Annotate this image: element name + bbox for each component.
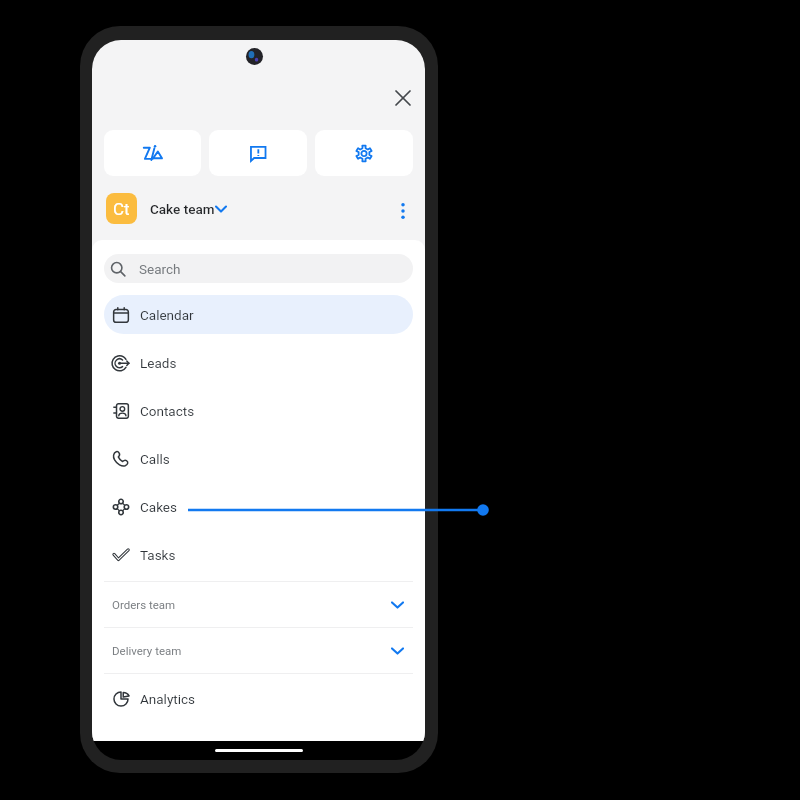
staticText: Calls xyxy=(140,451,170,467)
staticText: Cake team xyxy=(150,201,215,217)
button[interactable]: Calendar xyxy=(104,295,413,334)
staticText: Leads xyxy=(140,355,177,371)
button[interactable]: Cakes xyxy=(104,487,413,526)
staticText: Calendar xyxy=(140,307,194,323)
staticText: Analytics xyxy=(140,691,196,707)
button[interactable]: Calls xyxy=(104,439,413,478)
button[interactable]: Orders team xyxy=(92,582,425,627)
button[interactable]: More options xyxy=(387,193,419,225)
button[interactable]: Zia assistant xyxy=(104,130,201,176)
button[interactable]: Cake team xyxy=(150,201,227,217)
staticText: Contacts xyxy=(140,403,195,419)
button[interactable]: Settings xyxy=(315,130,413,176)
staticText: Tasks xyxy=(140,547,176,563)
button[interactable]: Contacts xyxy=(104,391,413,430)
button[interactable]: Analytics xyxy=(104,679,413,718)
staticText: Delivery team xyxy=(112,644,182,657)
button[interactable]: Deals xyxy=(92,722,425,741)
button[interactable]: Close xyxy=(387,82,419,114)
button[interactable]: Tasks xyxy=(104,535,413,574)
staticText: Search xyxy=(139,261,181,277)
button[interactable]: Feedback xyxy=(209,130,307,176)
button[interactable]: Delivery team xyxy=(92,628,425,673)
button[interactable]: Leads xyxy=(104,343,413,382)
staticText: Ct xyxy=(113,199,130,219)
staticText: Cakes xyxy=(140,499,177,515)
staticText: Orders team xyxy=(112,598,176,611)
button[interactable]: Search xyxy=(104,254,413,283)
